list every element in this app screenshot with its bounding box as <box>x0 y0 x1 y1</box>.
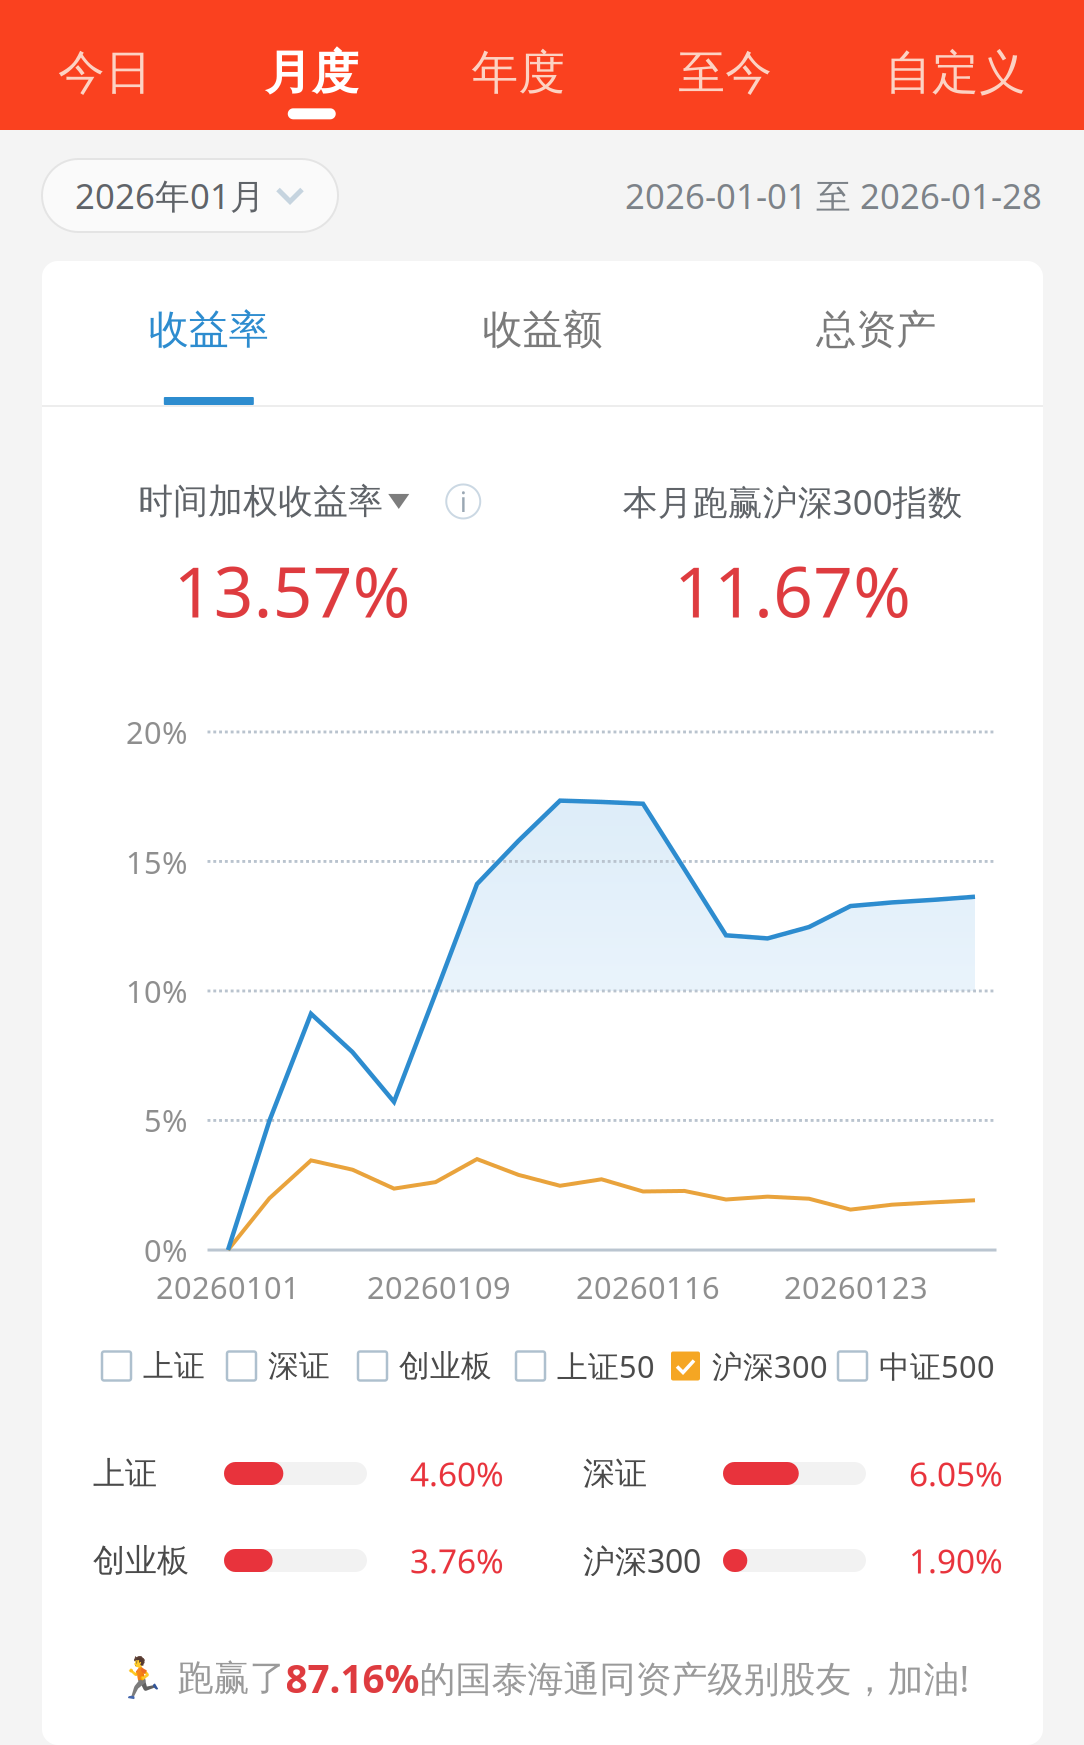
button[interactable]: 深证 <box>227 1336 330 1396</box>
button[interactable]: 沪深300 <box>671 1336 828 1396</box>
staticText: 1.90% <box>909 1538 1003 1583</box>
staticText: 创业板 <box>399 1347 492 1385</box>
staticText: 2026-01-01 至 2026-01-28 <box>625 172 1042 218</box>
staticText: 创业板 <box>93 1541 189 1580</box>
staticText: 10% <box>126 971 187 1011</box>
button[interactable]: 至今 <box>678 0 772 130</box>
staticText: 3.76% <box>410 1538 504 1583</box>
button[interactable]: 中证500 <box>838 1336 995 1396</box>
staticText: 87.16% <box>285 1652 419 1704</box>
staticText: 上证 <box>93 1454 157 1493</box>
staticText: 收益率 <box>149 305 269 354</box>
staticText: 深证 <box>268 1347 330 1385</box>
staticText: 🏃 <box>115 1655 165 1701</box>
staticText: 收益额 <box>482 305 602 354</box>
staticText: 4.60% <box>410 1451 504 1496</box>
staticText: 上证50 <box>557 1346 655 1386</box>
staticText: 中证500 <box>879 1346 995 1386</box>
staticText: 年度 <box>471 44 565 101</box>
button[interactable]: 创业板 <box>358 1336 492 1396</box>
staticText: 2026年01月 <box>75 172 265 218</box>
button[interactable]: 收益额 <box>376 261 709 405</box>
staticText: 跑赢了 <box>177 1656 285 1700</box>
button[interactable]: 年度 <box>471 0 565 130</box>
staticText: 的国泰海通同资产级别股友，加油! <box>419 1654 969 1702</box>
staticText: 月度 <box>265 44 359 101</box>
staticText: 20260123 <box>784 1267 928 1307</box>
staticText: 20% <box>126 712 187 752</box>
button[interactable]: 自定义 <box>885 0 1026 130</box>
staticText: i <box>460 483 467 520</box>
staticText: 15% <box>126 842 187 882</box>
staticText: 自定义 <box>885 44 1026 101</box>
button[interactable]: 总资产 <box>709 261 1043 405</box>
staticText: 20260101 <box>156 1267 300 1307</box>
button[interactable]: 今日 <box>58 0 152 130</box>
staticText: 20260116 <box>576 1267 720 1307</box>
button[interactable]: 上证 <box>102 1336 205 1396</box>
button[interactable]: 收益率 <box>42 261 376 405</box>
staticText: 11.67% <box>674 544 911 637</box>
staticText: 时间加权收益率 <box>138 480 383 523</box>
staticText: 5% <box>144 1100 187 1140</box>
staticText: 今日 <box>58 44 152 101</box>
button[interactable]: 2026年01月 <box>42 159 338 232</box>
staticText: 13.57% <box>174 544 411 637</box>
staticText: 6.05% <box>909 1451 1003 1496</box>
button[interactable]: 月度 <box>265 0 359 130</box>
staticText: 深证 <box>583 1454 647 1493</box>
staticText: 上证 <box>143 1347 205 1385</box>
staticText: 沪深300 <box>583 1539 701 1582</box>
staticText: 沪深300 <box>712 1346 828 1386</box>
staticText: 至今 <box>678 44 772 101</box>
staticText: 20260109 <box>367 1267 511 1307</box>
button[interactable]: 上证50 <box>516 1336 655 1396</box>
staticText: 本月跑赢沪深300指数 <box>623 478 963 524</box>
staticText: 总资产 <box>816 305 936 354</box>
staticText: 0% <box>144 1230 187 1270</box>
